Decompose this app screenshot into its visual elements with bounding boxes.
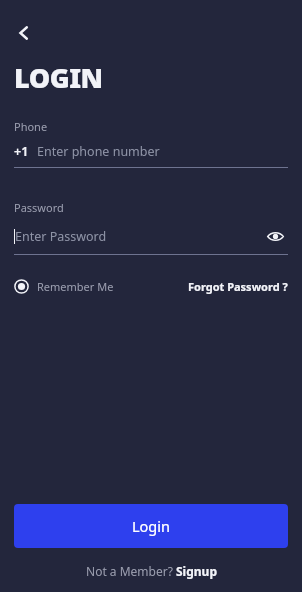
button[interactable]: Remember Me <box>14 279 114 294</box>
button[interactable]: Not a Member? Signup <box>86 563 217 579</box>
button[interactable]: Show password <box>262 223 288 249</box>
staticText: +1 <box>14 143 29 160</box>
staticText: Enter phone number <box>37 143 160 160</box>
staticText: Password <box>14 200 64 215</box>
button[interactable]: +1 <box>14 143 288 160</box>
staticText: Forgot Password ? <box>188 279 288 294</box>
button[interactable]: Back <box>8 17 40 49</box>
staticText: Enter Password <box>15 228 107 245</box>
staticText: Login <box>132 516 170 536</box>
button[interactable]: Enter Password <box>14 228 262 245</box>
staticText: Not a Member? Signup <box>86 563 217 579</box>
staticText: Phone <box>14 119 48 134</box>
button[interactable]: Forgot Password ? <box>188 279 288 294</box>
staticText: LOGIN <box>14 59 103 96</box>
button[interactable]: Login <box>14 504 288 548</box>
staticText: Remember Me <box>37 279 114 294</box>
